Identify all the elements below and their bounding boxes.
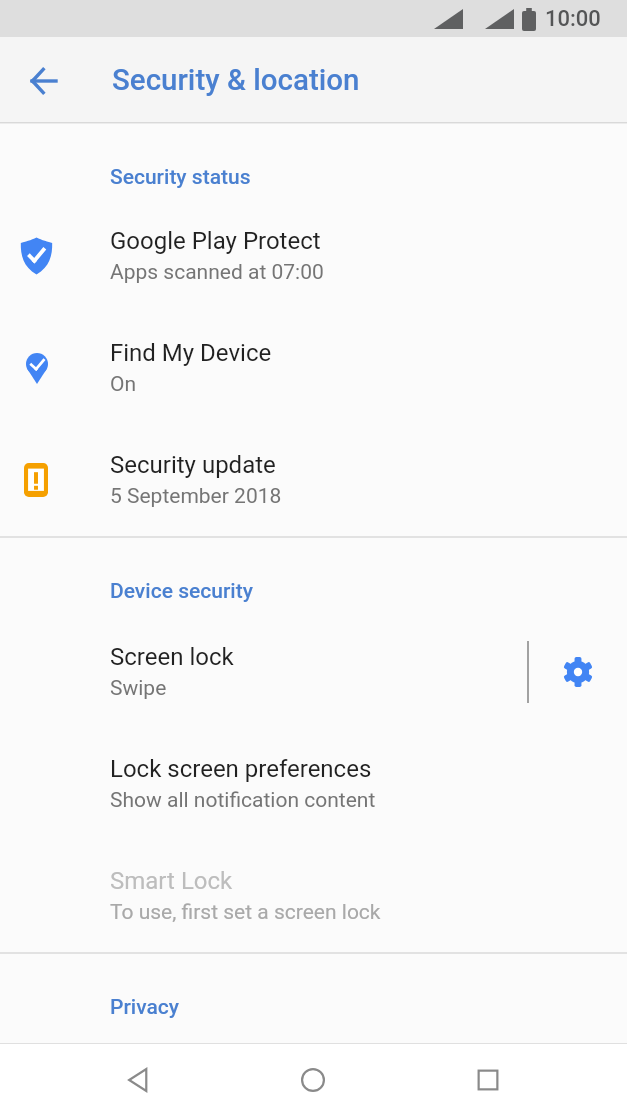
button[interactable] <box>300 1067 326 1093</box>
staticText: On <box>110 372 137 397</box>
button[interactable] <box>28 65 60 97</box>
staticText: 10:00 <box>545 6 601 32</box>
staticText: Security & location <box>112 63 360 98</box>
button[interactable]: Google Play Protect <box>0 200 627 312</box>
staticText: Security status <box>110 165 251 190</box>
staticText: Privacy <box>110 995 180 1020</box>
staticText: Lock screen preferences <box>110 755 372 783</box>
button[interactable] <box>126 1067 152 1093</box>
staticText: Find My Device <box>110 339 272 367</box>
staticText: Swipe <box>110 676 167 701</box>
staticText: Show all notification content <box>110 788 376 813</box>
button[interactable]: Security update <box>0 424 627 536</box>
staticText: Apps scanned at 07:00 <box>110 260 324 285</box>
button[interactable] <box>475 1067 501 1093</box>
staticText: Smart Lock <box>110 867 233 895</box>
staticText: 5 September 2018 <box>110 484 282 509</box>
button[interactable]: Screen lock <box>0 616 627 728</box>
staticText: To use, first set a screen lock <box>110 900 381 925</box>
button[interactable]: Find My Device <box>0 312 627 424</box>
staticText: Screen lock <box>110 643 234 671</box>
button[interactable]: Smart Lock <box>0 840 627 952</box>
staticText: Security update <box>110 451 276 479</box>
button[interactable] <box>562 656 594 688</box>
staticText: Google Play Protect <box>110 227 321 255</box>
staticText: Device security <box>110 579 253 604</box>
button[interactable]: Lock screen preferences <box>0 728 627 840</box>
